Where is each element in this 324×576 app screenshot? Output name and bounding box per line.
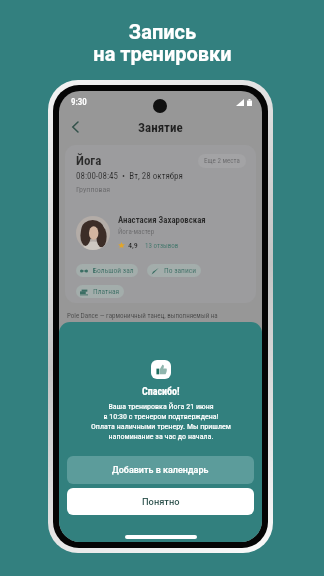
staticText: Pole Dance — гармоничный танец, выполняе… [67,312,218,320]
staticText: Еще 2 места [204,157,240,165]
button[interactable]: Понятно [67,488,254,515]
staticText: 4,9 [128,241,138,250]
staticText: Йога [76,153,102,168]
button[interactable]: Большой зал [76,264,138,277]
staticText: 13 отзывов [145,242,179,250]
button[interactable]: Добавить в календарь [67,456,254,484]
staticText: Большой зал [93,266,134,275]
staticText: Понятно [142,496,180,507]
staticText: Йога-мастер [118,228,155,236]
staticText: Анастасия Захаровская [118,215,206,225]
staticText: Ваша тренировка Йога 21 июня в 10:30 с т… [91,402,231,441]
button[interactable]: По записи [147,264,201,277]
staticText: Занятие [138,120,183,135]
staticText: Добавить в календарь [112,465,209,476]
staticText: 08:00-08:45 • Вт, 28 октября [76,171,183,182]
button[interactable]: Назад [64,116,86,138]
staticText: По записи [164,266,197,275]
staticText: Запись на тренировки [93,20,232,66]
staticText: Платная [93,287,120,296]
staticText: Групповая [76,185,111,194]
staticText: Спасибо! [142,386,180,398]
staticText: 9:30 [71,97,87,108]
button[interactable]: Платная [76,285,124,298]
